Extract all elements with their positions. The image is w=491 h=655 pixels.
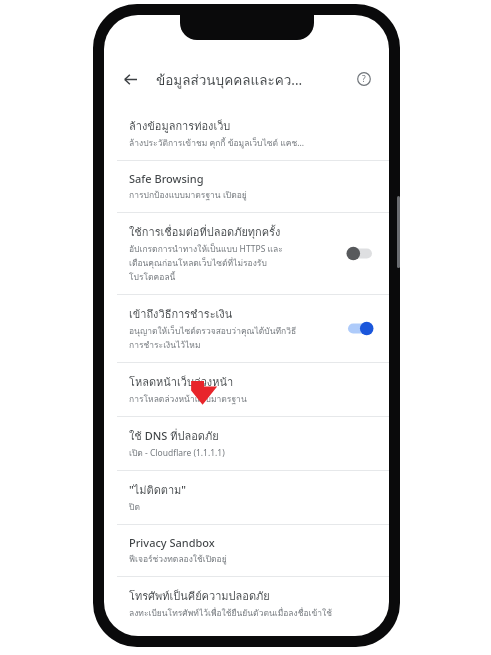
button[interactable]: ล้างข้อมูลการท่องเว็บ (104, 107, 389, 160)
staticText: เข้าถึงวิธีการชำระเงิน (129, 305, 233, 322)
staticText: เตือนคุณก่อนโหลดเว็บไซต์ที่ไม่รองรับ (129, 256, 267, 270)
button[interactable]: ใช้การเชื่อมต่อที่ปลอดภัยทุกครั้ง (104, 213, 389, 294)
staticText: การปกป้องแบบมาตรฐาน เปิดอยู่ (129, 188, 247, 202)
staticText: อนุญาตให้เว็บไซต์ตรวจสอบว่าคุณได้บันทึกว… (129, 324, 297, 338)
staticText: ใช้ DNS ที่ปลอดภัย (129, 427, 219, 444)
button[interactable]: "ไม่ติดตาม" (104, 471, 389, 524)
staticText: อัปเกรดการนำทางให้เป็นแบบ HTTPS และ (129, 242, 283, 256)
staticText: "ไม่ติดตาม" (129, 481, 187, 498)
staticText: ? (362, 73, 366, 85)
button[interactable]: Switch on (345, 320, 375, 337)
button[interactable]: เข้าถึงวิธีการชำระเงิน (104, 295, 389, 362)
staticText: ใช้การเชื่อมต่อที่ปลอดภัยทุกครั้ง (129, 223, 281, 240)
staticText: ล้างข้อมูลการท่องเว็บ (129, 117, 231, 134)
staticText: ลงทะเบียนโทรศัพท์ไว้เพื่อใช้ยืนยันตัวตนเ… (129, 606, 332, 620)
staticText: Privacy Sandbox (129, 535, 215, 550)
staticText: โทรศัพท์เป็นคีย์ความปลอดภัย (129, 587, 270, 604)
button[interactable]: Privacy Sandbox (104, 525, 389, 576)
staticText: การชำระเงินไว้ไหม (129, 338, 201, 352)
staticText: โหลดหน้าเว็บล่วงหน้า (129, 373, 234, 390)
staticText: เปิด - Cloudflare (1.1.1.1) (129, 446, 225, 460)
button[interactable]: ใช้ DNS ที่ปลอดภัย (104, 417, 389, 470)
button[interactable]: Back (118, 67, 142, 91)
button[interactable]: โหลดหน้าเว็บล่วงหน้า (104, 363, 389, 416)
staticText: ปิด (129, 500, 140, 514)
staticText: ล้างประวัติการเข้าชม คุกกี้ ข้อมูลเว็บไซ… (129, 136, 305, 150)
button[interactable]: โทรศัพท์เป็นคีย์ความปลอดภัย (104, 577, 389, 630)
staticText: Safe Browsing (129, 171, 204, 186)
button[interactable]: Safe Browsing (104, 161, 389, 212)
button[interactable]: Switch off (345, 245, 375, 262)
staticText: ข้อมูลส่วนบุคคลและคว... (156, 69, 352, 90)
button[interactable]: Help (352, 67, 376, 91)
staticText: การโหลดล่วงหน้าแบบมาตรฐาน (129, 392, 247, 406)
staticText: ฟีเจอร์ช่วงทดลองใช้เปิดอยู่ (129, 552, 227, 566)
staticText: โปรโตคอลนี้ (129, 270, 176, 284)
